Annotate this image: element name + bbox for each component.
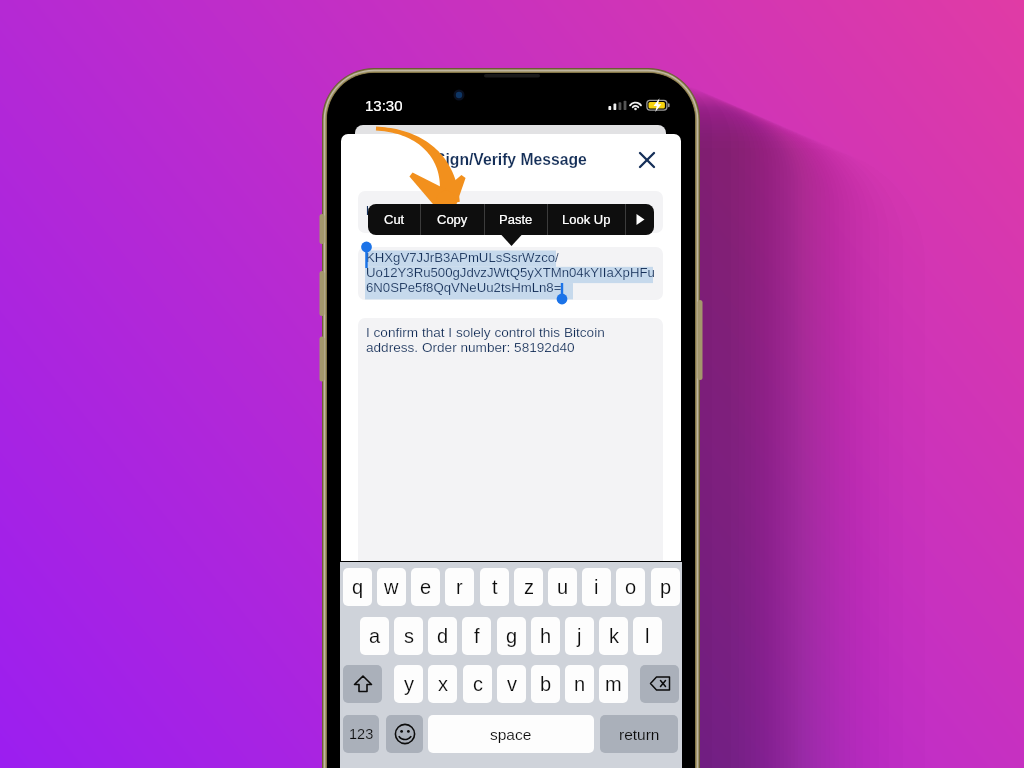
staticText: t bbox=[492, 576, 498, 598]
staticText: p bbox=[660, 576, 672, 598]
staticText: KHXgV7JJrB3APmULsSsrWzco/ bbox=[366, 250, 559, 265]
staticText: k bbox=[609, 625, 619, 647]
button[interactable]: w bbox=[377, 568, 406, 606]
button[interactable]: Copy bbox=[421, 204, 484, 235]
staticText: 123 bbox=[349, 726, 374, 742]
button[interactable]: Cut bbox=[368, 204, 420, 235]
button[interactable]: s bbox=[394, 617, 423, 655]
button[interactable]: I confirm that I solely control this Bit… bbox=[358, 318, 663, 561]
staticText: a bbox=[369, 625, 381, 647]
button[interactable]: m bbox=[599, 665, 628, 703]
button[interactable]: z bbox=[514, 568, 543, 606]
button[interactable]: c bbox=[463, 665, 492, 703]
staticText: b bbox=[540, 673, 552, 695]
staticText: Copy bbox=[437, 212, 468, 227]
staticText: f bbox=[474, 625, 480, 647]
button[interactable]: t bbox=[480, 568, 509, 606]
staticText: d bbox=[437, 625, 449, 647]
staticText: return bbox=[619, 726, 660, 743]
staticText: y bbox=[404, 673, 414, 695]
staticText: Cut bbox=[384, 212, 405, 227]
staticText: c bbox=[473, 673, 483, 695]
staticText: Uo12Y3Ru500gJdvzJWtQ5yXTMn04kYIIaXpHFu bbox=[366, 265, 655, 280]
button[interactable]: n bbox=[565, 665, 594, 703]
button[interactable]: Close bbox=[630, 143, 664, 177]
staticText: j bbox=[577, 625, 582, 647]
button[interactable]: q bbox=[343, 568, 372, 606]
button[interactable]: d bbox=[428, 617, 457, 655]
button[interactable]: KHXgV7JJrB3APmULsSsrWzco/ bbox=[358, 247, 663, 300]
button[interactable]: Emoji bbox=[386, 715, 423, 753]
staticText: g bbox=[506, 625, 518, 647]
button[interactable]: y bbox=[394, 665, 423, 703]
staticText: i bbox=[594, 576, 599, 598]
staticText: s bbox=[404, 625, 414, 647]
button[interactable]: f bbox=[462, 617, 491, 655]
button[interactable]: space bbox=[428, 715, 594, 753]
button[interactable]: Shift bbox=[343, 665, 382, 703]
button[interactable]: p bbox=[651, 568, 680, 606]
staticText: bc1q9a73re4ilkwyr3wjwp4v657qv8plt4sqwz3 bbox=[366, 203, 629, 218]
staticText: q bbox=[352, 576, 364, 598]
button[interactable]: x bbox=[428, 665, 457, 703]
staticText: m bbox=[605, 673, 622, 695]
staticText: space bbox=[490, 726, 532, 743]
staticText: I confirm that I solely control this Bit… bbox=[366, 325, 605, 340]
staticText: u bbox=[557, 576, 569, 598]
button[interactable]: i bbox=[582, 568, 611, 606]
staticText: l bbox=[645, 625, 650, 647]
button[interactable]: a bbox=[360, 617, 389, 655]
staticText: address. Order number: 58192d40 bbox=[366, 340, 575, 355]
button[interactable]: return bbox=[600, 715, 678, 753]
button[interactable]: Paste bbox=[485, 204, 547, 235]
button[interactable]: Backspace bbox=[640, 665, 679, 703]
staticText: x bbox=[438, 673, 448, 695]
button[interactable]: j bbox=[565, 617, 594, 655]
button[interactable]: b bbox=[531, 665, 560, 703]
staticText: r bbox=[456, 576, 463, 598]
button[interactable]: l bbox=[633, 617, 662, 655]
staticText: z bbox=[524, 576, 534, 598]
staticText: v bbox=[507, 673, 517, 695]
staticText: Sign/Verify Message bbox=[435, 151, 587, 169]
button[interactable]: h bbox=[531, 617, 560, 655]
button[interactable]: o bbox=[616, 568, 645, 606]
button[interactable]: bc1q9a73re4ilkwyr3wjwp4v657qv8plt4sqwz3 bbox=[358, 191, 663, 233]
button[interactable]: 123 bbox=[343, 715, 379, 753]
staticText: h bbox=[540, 625, 552, 647]
staticText: 13:30 bbox=[365, 97, 403, 114]
staticText: w bbox=[384, 576, 399, 598]
button[interactable]: More options bbox=[626, 204, 654, 235]
button[interactable]: u bbox=[548, 568, 577, 606]
button[interactable]: g bbox=[497, 617, 526, 655]
staticText: Look Up bbox=[562, 212, 611, 227]
staticText: e bbox=[420, 576, 432, 598]
staticText: o bbox=[625, 576, 637, 598]
button[interactable]: r bbox=[445, 568, 474, 606]
staticText: 6N0SPe5f8QqVNeUu2tsHmLn8= bbox=[366, 280, 562, 295]
button[interactable]: Look Up bbox=[548, 204, 625, 235]
staticText: Paste bbox=[499, 212, 533, 227]
button[interactable]: k bbox=[599, 617, 628, 655]
button[interactable]: e bbox=[411, 568, 440, 606]
staticText: n bbox=[574, 673, 586, 695]
button[interactable]: v bbox=[497, 665, 526, 703]
